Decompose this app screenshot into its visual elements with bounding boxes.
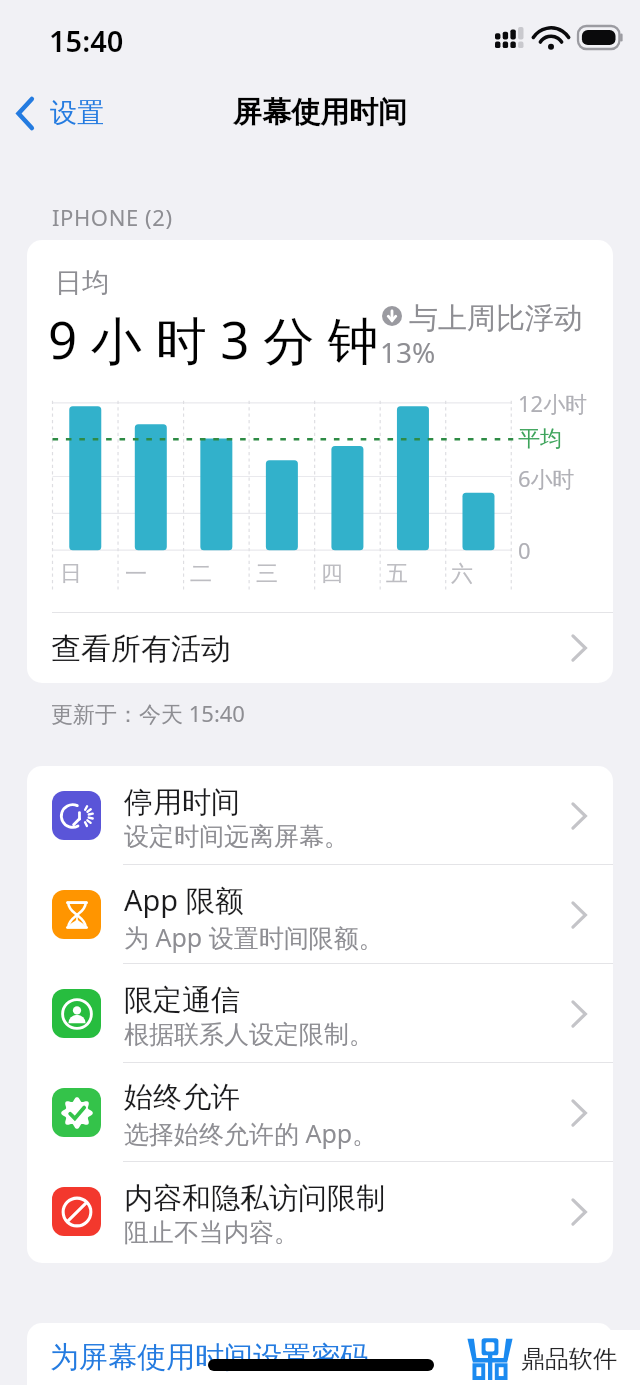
staticText: 二 bbox=[190, 560, 212, 588]
staticText: 0 bbox=[518, 535, 531, 565]
staticText: 根据联系人设定限制。 bbox=[124, 1019, 374, 1050]
staticText: 限定通信 bbox=[124, 982, 240, 1019]
staticText: 为屏幕使用时间设置密码 bbox=[50, 1339, 369, 1376]
button[interactable]: App 限额 bbox=[27, 865, 613, 964]
staticText: 始终允许 bbox=[124, 1079, 240, 1116]
staticText: 屏幕使用时间 bbox=[233, 94, 407, 131]
staticText: 四 bbox=[321, 560, 343, 588]
staticText: 查看所有活动 bbox=[51, 630, 231, 668]
staticText: 停用时间 bbox=[124, 784, 240, 821]
other: 鼎品软件 bbox=[466, 1336, 514, 1380]
staticText: 更新于：今天 15:40 bbox=[51, 698, 245, 728]
staticText: 6小时 bbox=[518, 463, 575, 493]
staticText: 日均 bbox=[55, 266, 109, 300]
staticText: App 限额 bbox=[124, 880, 244, 920]
staticText: 阻止不当内容。 bbox=[124, 1217, 299, 1248]
staticText: 选择始终允许的 App。 bbox=[124, 1116, 378, 1150]
staticText: 一 bbox=[125, 560, 147, 588]
staticText: 设置 bbox=[50, 96, 104, 130]
staticText: 9小时3分钟 bbox=[48, 304, 393, 374]
staticText: 12小时 bbox=[518, 388, 588, 418]
button[interactable]: 限定通信 bbox=[27, 964, 613, 1063]
staticText: IPHONE (2) bbox=[52, 202, 173, 232]
staticText: 三 bbox=[256, 560, 278, 588]
staticText: 内容和隐私访问限制 bbox=[124, 1180, 385, 1217]
staticText: 鼎品软件 bbox=[521, 1344, 617, 1374]
staticText: 与上周比浮动 bbox=[409, 300, 583, 337]
staticText: 五 bbox=[386, 560, 408, 588]
button[interactable]: 为屏幕使用时间设置密码 bbox=[27, 1323, 613, 1385]
staticText: 15:40 bbox=[49, 21, 124, 60]
staticText: 六 bbox=[451, 560, 473, 588]
button[interactable]: 设置 bbox=[8, 90, 118, 136]
staticText: 为 App 设置时间限额。 bbox=[124, 920, 384, 954]
staticText: 平均 bbox=[518, 425, 562, 453]
button[interactable]: 查看所有活动 bbox=[27, 613, 613, 683]
button[interactable]: 始终允许 bbox=[27, 1063, 613, 1162]
staticText: 13% bbox=[380, 333, 436, 371]
staticText: 设定时间远离屏幕。 bbox=[124, 821, 349, 852]
staticText: 日 bbox=[60, 560, 82, 588]
button[interactable]: 停用时间 bbox=[27, 766, 613, 865]
button[interactable]: 内容和隐私访问限制 bbox=[27, 1162, 613, 1261]
